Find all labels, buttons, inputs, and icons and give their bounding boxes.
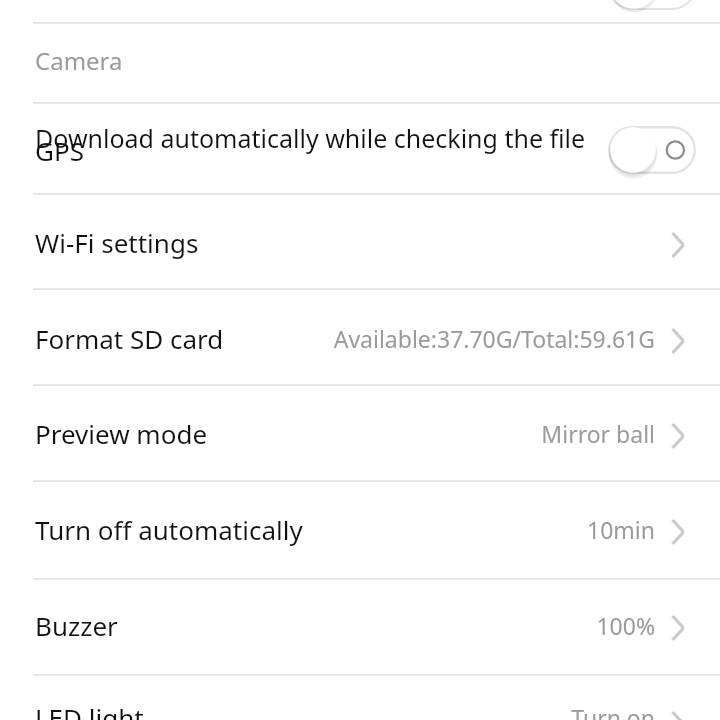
staticText: Preview mode (35, 416, 208, 451)
other: GPS toggle (608, 126, 696, 174)
button[interactable]: Wi-Fi settings (0, 195, 720, 289)
button[interactable]: Download automatically while checking th… (0, 104, 720, 192)
button[interactable]: LED light (0, 676, 720, 720)
staticText: LED light (35, 700, 144, 720)
staticText: Camera (35, 44, 123, 77)
button[interactable]: Toggle (608, 0, 696, 10)
staticText: 100% (0, 610, 655, 641)
button[interactable]: Preview mode (0, 386, 720, 480)
other: Open (660, 610, 696, 646)
staticText: Available:37.70G/Total:59.61G (0, 323, 655, 354)
button[interactable]: GPS toggle (608, 126, 696, 174)
staticText: Turn off automatically (35, 512, 303, 547)
staticText: Download automatically while checking th… (35, 121, 586, 155)
staticText: Wi-Fi settings (35, 225, 199, 260)
button[interactable]: Format SD card (0, 290, 720, 384)
other: Open (660, 706, 696, 720)
other: Open (660, 227, 696, 263)
other: Toggle (608, 0, 696, 10)
other: Open (660, 323, 696, 359)
other: Open (660, 514, 696, 550)
staticText: 10min (0, 514, 655, 545)
button[interactable]: Buzzer (0, 580, 720, 674)
staticText: Format SD card (35, 321, 224, 356)
staticText: Buzzer (35, 608, 118, 643)
staticText: GPS (35, 133, 84, 168)
other: Open (660, 418, 696, 454)
staticText: Turn on (0, 702, 655, 720)
staticText: Mirror ball (0, 418, 655, 449)
button[interactable]: Turn off automatically (0, 482, 720, 576)
